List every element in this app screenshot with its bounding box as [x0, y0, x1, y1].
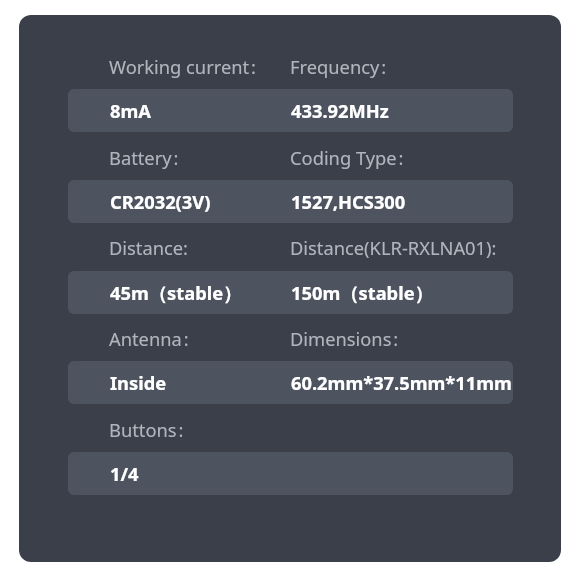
staticText: 45m（stable） — [110, 280, 291, 305]
staticText: Coding Type : — [290, 145, 404, 170]
staticText: Distance(KLR-RXLNA01): — [290, 235, 497, 260]
staticText: Antenna : — [109, 326, 290, 351]
staticText: Battery : — [109, 145, 290, 170]
button[interactable]: 8mA — [68, 89, 513, 132]
staticText: Working current : — [109, 54, 290, 79]
staticText: 8mA — [110, 98, 291, 123]
button[interactable]: 1/4 — [68, 452, 513, 495]
staticText: 433.92MHz — [291, 98, 389, 123]
staticText: Inside — [110, 370, 291, 395]
staticText: 1527,HCS300 — [291, 189, 406, 214]
staticText: 150m（stable） — [291, 280, 433, 305]
staticText: 60.2mm*37.5mm*11mm — [291, 370, 512, 395]
button[interactable]: CR2032(3V) — [68, 180, 513, 223]
staticText: Distance: — [109, 235, 290, 260]
button[interactable]: 45m（stable） — [68, 271, 513, 314]
staticText: 1/4 — [110, 461, 291, 486]
button[interactable]: Inside — [68, 361, 513, 404]
staticText: CR2032(3V) — [110, 189, 291, 214]
staticText: Dimensions : — [290, 326, 399, 351]
staticText: Buttons : — [109, 417, 290, 442]
staticText: Frequency : — [290, 54, 387, 79]
